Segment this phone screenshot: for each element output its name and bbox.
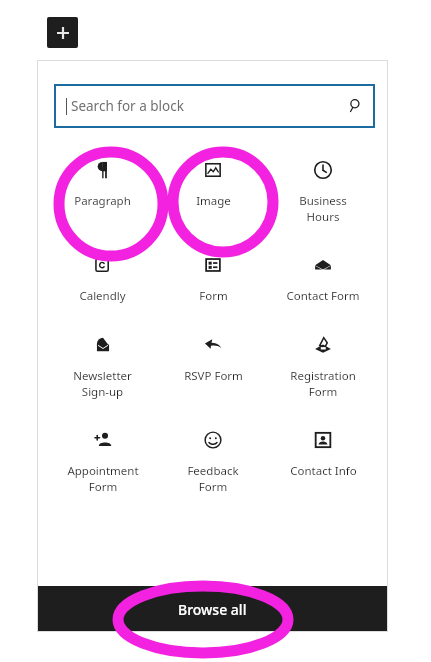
button[interactable]: Contact Form [270, 254, 376, 304]
button[interactable]: Calendly [49, 254, 156, 304]
staticText: Search for a block [71, 97, 184, 115]
button[interactable]: Registration Form [270, 334, 376, 399]
button[interactable]: Paragraph [49, 159, 156, 209]
staticText: Contact Form [286, 288, 360, 304]
button[interactable]: Search for a block [54, 84, 375, 128]
staticText: Image [196, 193, 231, 209]
staticText: RSVP Form [184, 368, 243, 384]
button[interactable]: Appointment Form [49, 429, 156, 494]
staticText: Contact Info [290, 463, 357, 479]
button[interactable]: Add block [47, 17, 78, 48]
button[interactable]: Newsletter Sign-up [49, 334, 156, 399]
button[interactable]: Browse all [37, 586, 388, 632]
staticText: Calendly [79, 288, 126, 304]
button[interactable]: Feedback Form [160, 429, 266, 494]
staticText: Paragraph [74, 193, 131, 209]
button[interactable]: Contact Info [270, 429, 376, 479]
button[interactable]: Image [160, 159, 266, 209]
staticText: Appointment Form [67, 463, 139, 494]
staticText: Browse all [178, 600, 247, 619]
staticText: Newsletter Sign-up [73, 368, 132, 399]
staticText: Business Hours [299, 193, 347, 224]
button[interactable]: Business Hours [270, 159, 376, 224]
button[interactable]: RSVP Form [160, 334, 266, 384]
staticText: Form [199, 288, 228, 304]
staticText: Feedback Form [187, 463, 239, 494]
staticText: Registration Form [290, 368, 356, 399]
button[interactable]: Form [160, 254, 266, 304]
